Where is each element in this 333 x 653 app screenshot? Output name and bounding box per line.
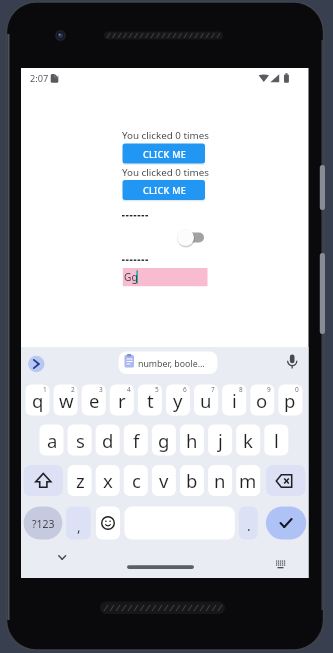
staticText: 7 [211,385,215,393]
staticText: p [284,388,296,413]
staticText: ?123 [32,517,55,531]
staticText: f [133,428,140,453]
staticText: e [89,388,100,413]
staticText: m [239,468,257,493]
staticText: u [200,388,212,413]
staticText: o [256,388,268,413]
staticText: w [59,388,74,413]
staticText: 1 [43,385,47,393]
staticText: 2 [71,385,75,393]
staticText: h [186,428,198,453]
staticText: You clicked 0 times [122,166,209,179]
staticText: z [76,468,85,493]
staticText: 2:07 [30,72,49,85]
staticText: 0 [295,385,299,393]
staticText: i [232,388,237,413]
staticText: y [173,388,183,413]
staticText: s [76,428,85,453]
staticText: l [274,428,279,453]
staticText: d [102,428,114,453]
staticText: x [103,468,113,493]
staticText: 8 [239,385,243,393]
staticText: number, boole... [138,358,205,370]
staticText: . [247,517,251,535]
staticText: c [132,468,141,493]
staticText: a [47,428,58,453]
staticText: r [118,388,126,413]
staticText: j [218,428,223,453]
staticText: CLICK ME [143,184,187,196]
staticText: Gg [124,270,138,284]
staticText: CLICK ME [143,148,187,160]
staticText: k [243,428,253,453]
staticText: v [159,468,169,493]
staticText: 4 [127,385,131,393]
staticText: 9 [267,385,271,393]
staticText: n [214,468,226,493]
staticText: t [147,388,154,413]
staticText: g [158,428,170,453]
staticText: b [186,468,198,493]
staticText: , [77,518,81,536]
staticText: q [32,388,44,413]
staticText: You clicked 0 times [122,129,209,142]
staticText: 6 [183,385,187,393]
staticText: 3 [99,385,103,393]
staticText: 5 [155,385,159,393]
